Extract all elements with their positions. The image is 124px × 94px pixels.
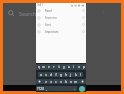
button[interactable]: o xyxy=(76,64,81,70)
button[interactable]: l xyxy=(78,72,83,77)
staticText: n xyxy=(70,80,72,84)
button[interactable]: r xyxy=(51,64,56,70)
staticText: r xyxy=(53,65,55,69)
staticText: l xyxy=(80,73,81,77)
staticText: f xyxy=(55,73,57,77)
button[interactable]: j xyxy=(68,72,73,77)
button[interactable]: d xyxy=(48,72,53,77)
staticText: q xyxy=(38,65,40,69)
staticText: Read xyxy=(45,9,52,13)
button[interactable]: m xyxy=(73,79,78,84)
button[interactable]: Search xyxy=(79,86,85,92)
staticText: m xyxy=(74,80,77,84)
staticText: i xyxy=(73,65,74,69)
staticText: o xyxy=(78,65,80,69)
button[interactable]: , xyxy=(44,86,49,91)
button[interactable]: v xyxy=(58,79,63,84)
staticText: a xyxy=(40,73,42,77)
button[interactable]: y xyxy=(61,64,66,70)
staticText: k xyxy=(75,73,77,77)
button[interactable]: Read xyxy=(36,7,86,14)
staticText: , xyxy=(46,87,47,91)
staticText: s xyxy=(45,73,47,77)
button[interactable]: w xyxy=(41,64,46,70)
button[interactable]: . xyxy=(72,86,77,91)
staticText: y xyxy=(63,65,65,69)
button[interactable]: e xyxy=(46,64,51,70)
staticText: Search mail xyxy=(19,10,49,17)
button[interactable]: u xyxy=(66,64,71,70)
button[interactable]: x xyxy=(48,79,53,84)
staticText: j xyxy=(70,73,71,77)
button[interactable]: h xyxy=(63,72,68,77)
button[interactable]: s xyxy=(43,72,48,77)
staticText: x xyxy=(50,80,52,84)
button[interactable]: f xyxy=(53,72,58,77)
staticText: Sent xyxy=(45,23,51,27)
button[interactable]: From me xyxy=(36,14,86,21)
button[interactable]: q xyxy=(36,64,41,70)
staticText: Important xyxy=(45,30,59,34)
staticText: 9:41 xyxy=(37,3,43,7)
button[interactable]: ?123 xyxy=(36,86,44,91)
staticText: v xyxy=(60,80,62,84)
button[interactable]: g xyxy=(58,72,63,77)
button[interactable]: Backspace xyxy=(78,79,86,84)
staticText: g xyxy=(60,73,62,77)
staticText: p xyxy=(83,65,85,69)
staticText: c xyxy=(55,80,57,84)
button[interactable]: p xyxy=(81,64,86,70)
other: Search xyxy=(7,9,16,18)
staticText: e xyxy=(48,65,50,69)
button[interactable]: b xyxy=(63,79,68,84)
button[interactable]: n xyxy=(68,79,73,84)
staticText: u xyxy=(68,65,70,69)
staticText: h xyxy=(65,73,67,77)
button[interactable]: z xyxy=(43,79,48,84)
staticText: d xyxy=(50,73,52,77)
staticText: . xyxy=(74,87,75,91)
button[interactable]: Shift xyxy=(36,79,43,84)
staticText: From me xyxy=(45,16,57,20)
button[interactable]: c xyxy=(53,79,58,84)
staticText: w xyxy=(42,65,45,69)
button[interactable]: Search xyxy=(7,8,49,18)
staticText: ?123 xyxy=(37,87,44,91)
button[interactable]: a xyxy=(38,72,43,77)
staticText: t xyxy=(58,65,60,69)
staticText: z xyxy=(45,80,47,84)
button[interactable]: k xyxy=(73,72,78,77)
button[interactable]: t xyxy=(56,64,61,70)
button[interactable]: Important xyxy=(36,28,86,35)
button[interactable]: i xyxy=(71,64,76,70)
staticText: b xyxy=(65,80,67,84)
button[interactable]: Sent xyxy=(36,21,86,28)
